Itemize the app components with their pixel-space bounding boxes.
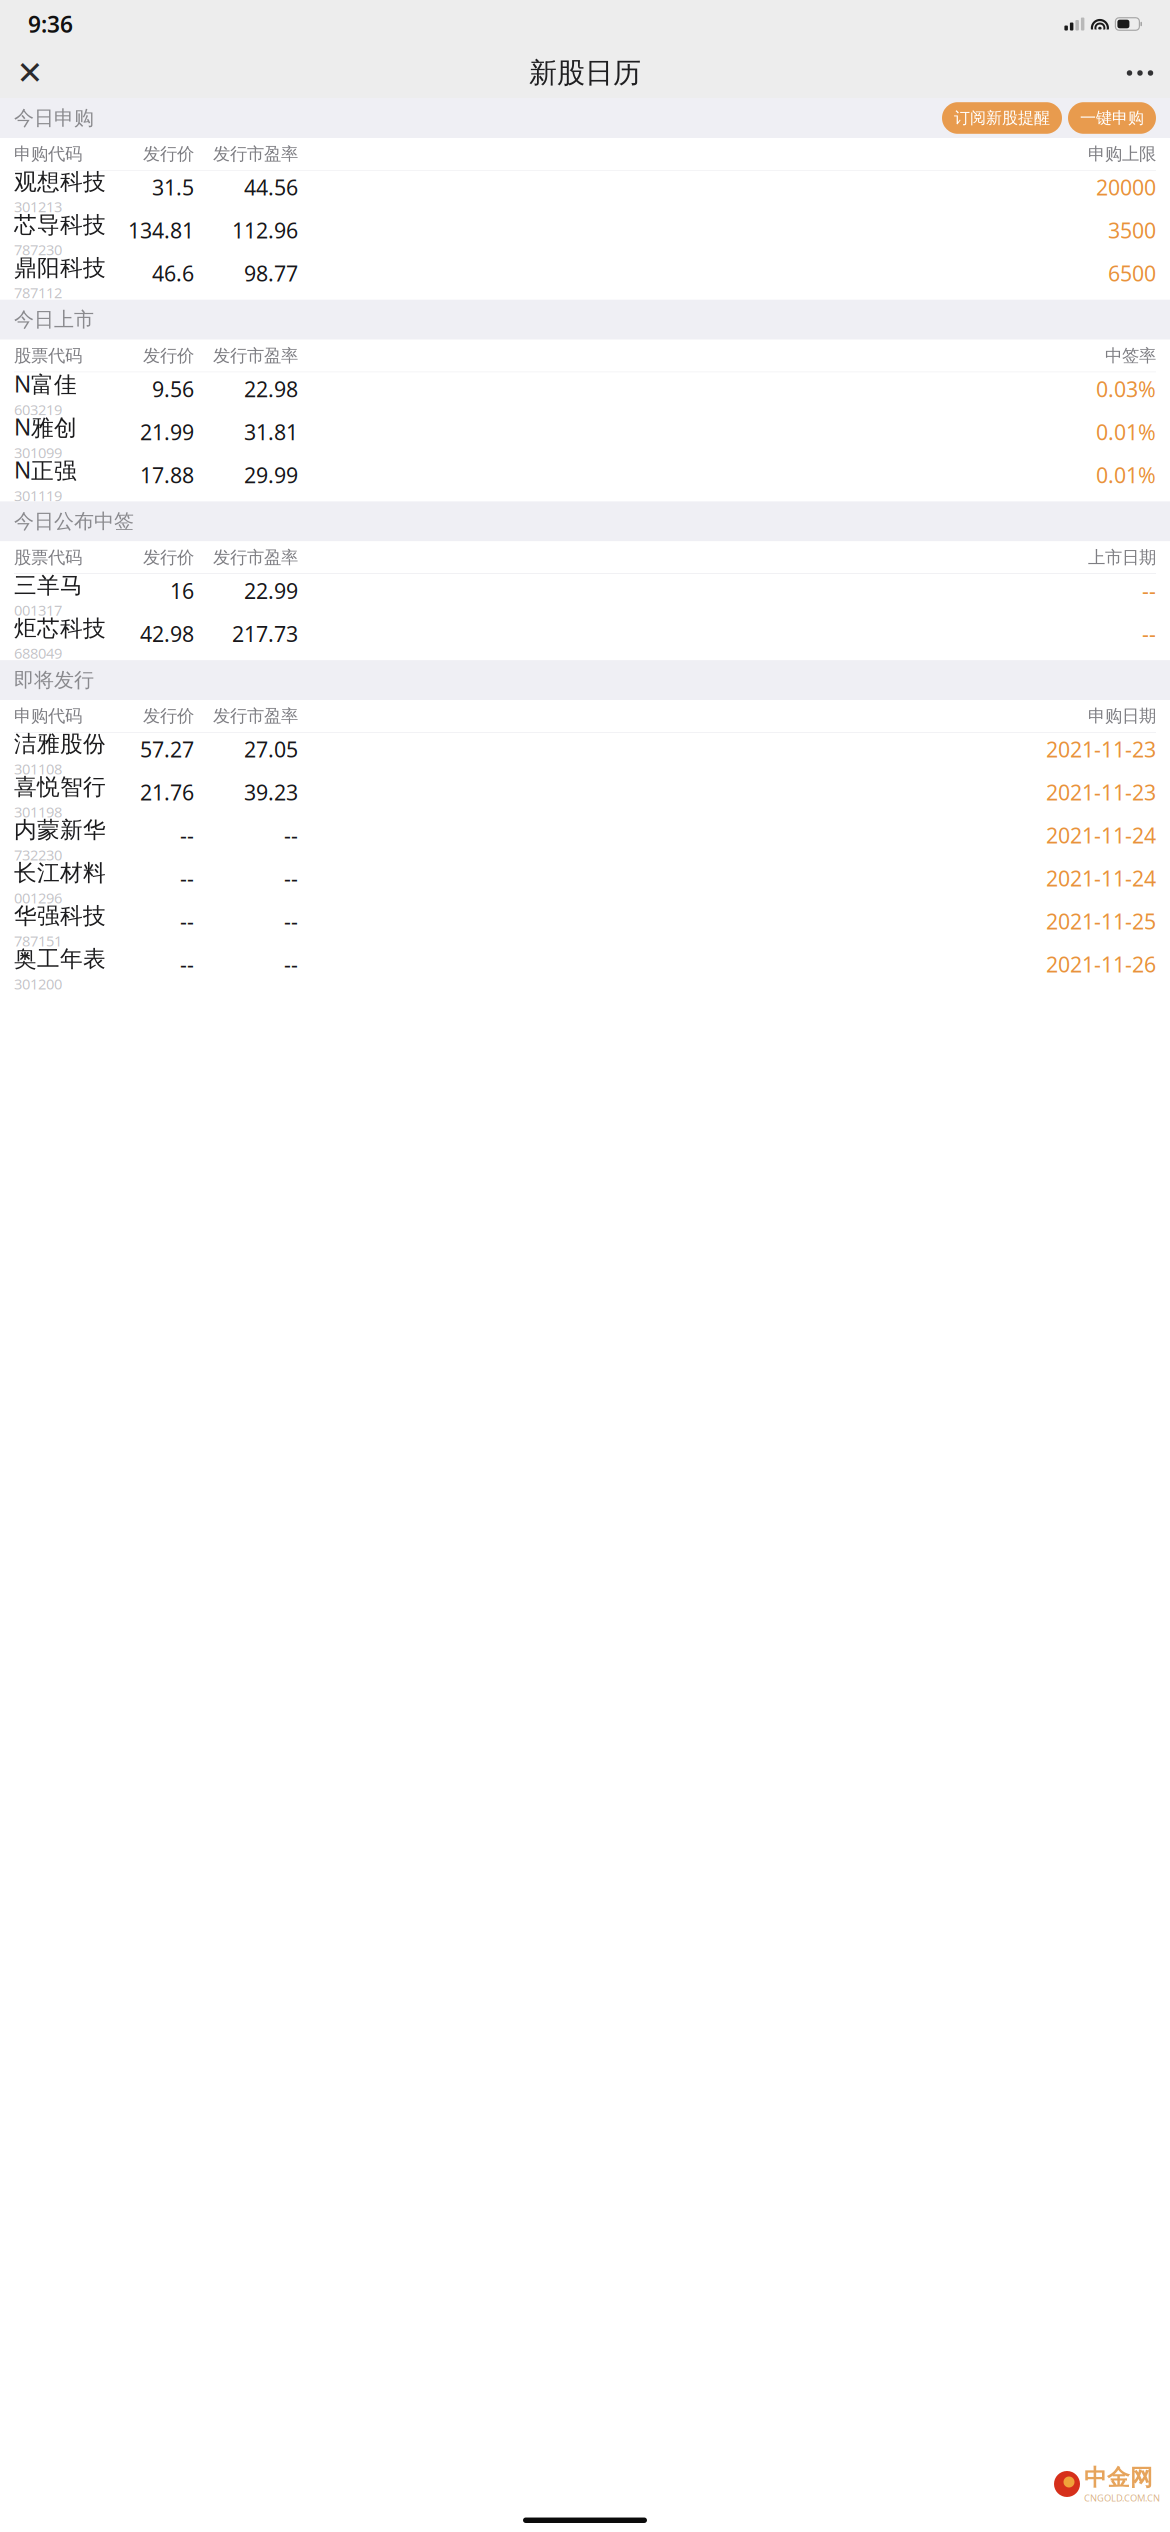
button[interactable]: N雅创 <box>0 415 1170 458</box>
staticText: 上市日期 <box>1088 547 1156 568</box>
staticText: 中金网 <box>1084 2464 1153 2492</box>
staticText: N正强 <box>14 455 77 485</box>
staticText: 001317 <box>14 600 62 620</box>
button[interactable]: 奥工年表 <box>0 948 1170 991</box>
staticText: 今日公布中签 <box>14 509 134 534</box>
staticText: 发行价 <box>143 705 194 727</box>
button[interactable]: 喜悦智行 <box>0 776 1170 819</box>
staticText: 申购日期 <box>1088 705 1156 727</box>
button[interactable]: N正强 <box>0 458 1170 501</box>
button[interactable]: Close <box>8 51 52 95</box>
staticText: 内蒙新华 <box>14 816 106 844</box>
staticText: 27.05 <box>244 735 298 763</box>
staticText: N雅创 <box>14 412 77 442</box>
button[interactable]: 长江材料 <box>0 862 1170 905</box>
staticText: 57.27 <box>140 735 194 763</box>
staticText: 217.73 <box>232 619 298 648</box>
staticText: 三羊马 <box>14 571 83 599</box>
staticText: 9:36 <box>28 9 73 39</box>
button[interactable]: 炬芯科技 <box>0 617 1170 660</box>
staticText: 134.81 <box>128 216 194 244</box>
staticText: -- <box>284 950 298 978</box>
staticText: -- <box>284 907 298 935</box>
staticText: 奥工年表 <box>14 945 106 973</box>
staticText: ✕ <box>16 55 43 91</box>
staticText: 即将发行 <box>14 668 94 692</box>
staticText: 2021-11-24 <box>1046 864 1156 892</box>
staticText: 新股日历 <box>529 56 641 90</box>
staticText: 今日申购 <box>14 106 94 130</box>
staticText: 0.03% <box>1096 375 1156 403</box>
staticText: N富佳 <box>14 369 77 399</box>
staticText: 29.99 <box>244 461 298 489</box>
staticText: 603219 <box>14 400 62 419</box>
staticText: 发行价 <box>143 345 194 366</box>
staticText: 301119 <box>14 486 62 505</box>
staticText: 9.56 <box>152 375 194 403</box>
staticText: -- <box>180 821 194 849</box>
button[interactable]: 订阅新股提醒 <box>942 102 1062 134</box>
staticText: 112.96 <box>232 216 298 244</box>
button[interactable]: 一键申购 <box>1068 102 1156 134</box>
button[interactable]: 华强科技 <box>0 905 1170 948</box>
button[interactable]: 鼎阳科技 <box>0 257 1170 300</box>
staticText: 787230 <box>14 240 62 259</box>
staticText: 发行价 <box>143 547 194 568</box>
staticText: 0.01% <box>1096 418 1156 446</box>
staticText: 申购代码 <box>14 143 82 165</box>
staticText: 华强科技 <box>14 902 106 930</box>
staticText: 732230 <box>14 845 62 864</box>
staticText: 39.23 <box>244 778 298 806</box>
staticText: 31.81 <box>244 418 298 446</box>
staticText: 发行市盈率 <box>213 547 298 568</box>
staticText: 6500 <box>1108 259 1156 287</box>
staticText: 46.6 <box>152 259 194 287</box>
staticText: 2021-11-23 <box>1046 778 1156 806</box>
staticText: 今日上市 <box>14 307 94 332</box>
button[interactable]: 芯导科技 <box>0 214 1170 257</box>
staticText: 长江材料 <box>14 859 106 887</box>
staticText: 301200 <box>14 974 62 993</box>
staticText: 301213 <box>14 197 62 216</box>
staticText: 21.99 <box>140 418 194 446</box>
staticText: 2021-11-25 <box>1046 907 1156 935</box>
staticText: 688049 <box>14 643 62 663</box>
staticText: 2021-11-24 <box>1046 821 1156 849</box>
staticText: 鼎阳科技 <box>14 254 106 282</box>
staticText: 发行市盈率 <box>213 345 298 366</box>
staticText: -- <box>1142 619 1156 648</box>
staticText: 发行市盈率 <box>213 705 298 727</box>
staticText: 发行市盈率 <box>213 143 298 165</box>
staticText: 股票代码 <box>14 547 82 568</box>
staticText: -- <box>180 864 194 892</box>
staticText: 2021-11-26 <box>1046 950 1156 978</box>
staticText: 44.56 <box>244 173 298 201</box>
staticText: 订阅新股提醒 <box>954 108 1050 128</box>
staticText: -- <box>284 864 298 892</box>
button[interactable]: N富佳 <box>0 372 1170 415</box>
button[interactable]: 三羊马 <box>0 574 1170 617</box>
staticText: 21.76 <box>140 778 194 806</box>
button[interactable]: 洁雅股份 <box>0 733 1170 776</box>
staticText: 31.5 <box>152 173 194 201</box>
staticText: 22.99 <box>244 576 298 605</box>
button[interactable]: 内蒙新华 <box>0 819 1170 862</box>
staticText: 观想科技 <box>14 168 106 196</box>
button[interactable]: 观想科技 <box>0 171 1170 214</box>
staticText: 17.88 <box>140 461 194 489</box>
staticText: 301099 <box>14 443 62 462</box>
staticText: 炬芯科技 <box>14 614 106 642</box>
staticText: 喜悦智行 <box>14 773 106 801</box>
staticText: 16 <box>170 576 194 605</box>
staticText: 中签率 <box>1105 345 1156 366</box>
staticText: 301198 <box>14 802 62 821</box>
staticText: 股票代码 <box>14 345 82 366</box>
staticText: -- <box>180 950 194 978</box>
staticText: 98.77 <box>244 259 298 287</box>
staticText: 申购代码 <box>14 705 82 727</box>
staticText: 洁雅股份 <box>14 730 106 758</box>
button[interactable]: More options <box>1118 51 1162 95</box>
staticText: -- <box>284 821 298 849</box>
staticText: 申购上限 <box>1088 143 1156 165</box>
staticText: CNGOLD.COM.CN <box>1084 2492 1160 2504</box>
